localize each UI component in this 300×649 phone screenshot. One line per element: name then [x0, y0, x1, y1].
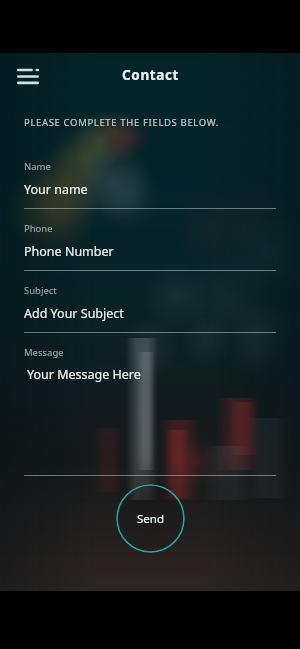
staticText: Phone	[24, 222, 53, 235]
button[interactable]: Message	[24, 346, 276, 476]
staticText: Name	[24, 160, 51, 173]
staticText: Subject	[24, 284, 57, 297]
staticText: Phone Number	[24, 243, 114, 260]
button[interactable]: Phone	[24, 222, 276, 271]
staticText: PLEASE COMPLETE THE FIELDS BELOW.	[24, 116, 219, 129]
staticText: Your Message Here	[27, 366, 141, 383]
button[interactable]: Name	[24, 160, 276, 209]
button[interactable]: Open navigation menu	[10, 57, 46, 93]
button[interactable]: Subject	[24, 284, 276, 333]
staticText: Message	[24, 346, 64, 359]
staticText: Add Your Subject	[24, 305, 124, 322]
staticText: Your name	[24, 181, 88, 198]
staticText: Send	[137, 511, 164, 527]
button[interactable]: Send	[116, 484, 185, 553]
staticText: Contact	[122, 66, 179, 84]
